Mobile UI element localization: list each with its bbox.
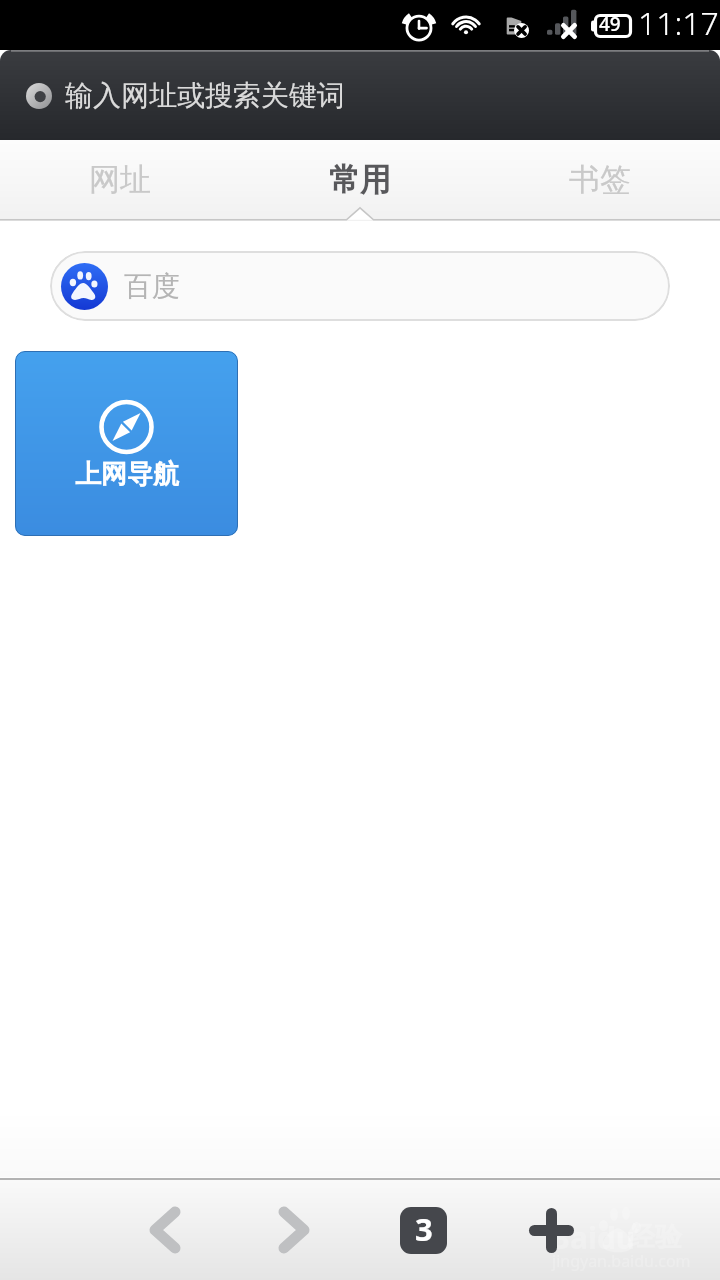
staticText: jingyan.baidu.com xyxy=(552,1250,691,1272)
button[interactable]: New tab xyxy=(487,1180,615,1280)
button[interactable]: 网址 xyxy=(0,140,240,221)
button[interactable]: 上网导航 xyxy=(15,351,238,536)
staticText: 百度 xyxy=(124,269,180,304)
button[interactable]: 书签 xyxy=(480,140,720,221)
button[interactable]: Tabs xyxy=(359,1180,487,1280)
staticText: Baidu xyxy=(550,1217,636,1258)
staticText: 常用 xyxy=(329,160,391,199)
button[interactable]: Back xyxy=(101,1180,229,1280)
staticText: 网址 xyxy=(89,160,151,199)
button[interactable]: 常用 xyxy=(240,140,480,221)
button[interactable]: 输入网址或搜索关键词 xyxy=(0,50,720,140)
staticText: 3 xyxy=(415,1208,433,1250)
button[interactable]: Forward xyxy=(230,1180,358,1280)
staticText: 上网导航 xyxy=(75,458,179,491)
staticText: 书签 xyxy=(569,160,631,199)
staticText: 11:17 xyxy=(638,1,719,45)
staticText: 49 xyxy=(599,11,621,37)
staticText: 输入网址或搜索关键词 xyxy=(65,78,345,113)
button[interactable]: 百度 xyxy=(50,251,670,321)
